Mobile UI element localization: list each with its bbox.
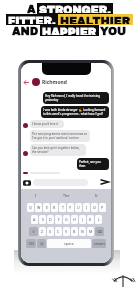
button[interactable]: N xyxy=(79,227,86,236)
staticText: N xyxy=(81,229,84,234)
staticText: J xyxy=(82,217,83,222)
staticText: I xyxy=(35,193,37,198)
staticText: G xyxy=(65,217,68,222)
staticText: YOU xyxy=(100,25,127,36)
button[interactable]: ⇧ xyxy=(29,227,38,236)
button[interactable]: P xyxy=(99,203,106,212)
button[interactable]: I xyxy=(83,203,90,212)
staticText: O xyxy=(93,205,96,210)
staticText: Q xyxy=(29,205,32,210)
button[interactable]: Y xyxy=(67,203,74,212)
staticText: It xyxy=(95,193,98,198)
staticText: I know you'd love it xyxy=(32,122,58,126)
staticText: Perfect, see you then xyxy=(79,160,107,168)
button[interactable]: X xyxy=(47,227,54,236)
staticText: L xyxy=(98,217,100,222)
staticText: A xyxy=(33,217,36,222)
button[interactable]: H xyxy=(71,215,78,224)
staticText: T xyxy=(62,205,64,210)
button[interactable]: Camera xyxy=(23,179,31,186)
staticText: P xyxy=(101,205,104,210)
button[interactable]: return xyxy=(92,239,106,248)
button[interactable]: A xyxy=(31,215,38,224)
button[interactable]: I was both kinda stronger 💪 Looking forw… xyxy=(43,108,107,116)
button[interactable]: Q xyxy=(27,203,34,212)
staticText: 123 xyxy=(28,241,35,246)
button[interactable]: ☺ xyxy=(37,239,46,248)
staticText: ☺ xyxy=(40,242,44,246)
staticText: Z xyxy=(41,229,44,234)
button[interactable]: The new programme starts tomorrow so I'v… xyxy=(32,132,88,140)
button[interactable]: W xyxy=(35,203,42,212)
button[interactable]: U xyxy=(75,203,82,212)
staticText: Can you best get it together below, the … xyxy=(32,146,84,154)
button[interactable]: Back xyxy=(21,76,111,88)
button[interactable]: T xyxy=(59,203,66,212)
button[interactable]: K xyxy=(87,215,94,224)
button[interactable]: ⌫ xyxy=(95,227,104,236)
staticText: M xyxy=(89,229,93,234)
staticText: W xyxy=(37,205,41,210)
button[interactable]: space xyxy=(47,239,91,248)
button[interactable]: Send xyxy=(100,178,109,186)
button[interactable]: The xyxy=(51,193,81,198)
button[interactable]: Back xyxy=(23,79,30,86)
button[interactable]: S xyxy=(39,215,46,224)
staticText: HEALTHIER xyxy=(60,15,131,24)
button[interactable]: J xyxy=(79,215,86,224)
staticText: U xyxy=(77,205,80,210)
button[interactable]: Can you best get it together below, the … xyxy=(32,146,84,154)
staticText: A xyxy=(27,3,36,14)
button[interactable]: Hey Richmond, I really loved the trainin… xyxy=(45,94,107,102)
staticText: H xyxy=(73,217,76,222)
staticText: The xyxy=(63,193,70,198)
button[interactable]: B xyxy=(71,227,78,236)
staticText: X xyxy=(49,229,52,234)
button[interactable]: V xyxy=(63,227,70,236)
staticText: ⌫ xyxy=(97,230,103,234)
staticText: return xyxy=(94,241,105,246)
staticText: F xyxy=(58,217,60,222)
button[interactable]: G xyxy=(63,215,70,224)
staticText: V xyxy=(65,229,68,234)
staticText: space xyxy=(64,241,74,246)
button[interactable]: L xyxy=(95,215,102,224)
button[interactable]: M xyxy=(87,227,94,236)
button[interactable]: D xyxy=(47,215,54,224)
staticText: Hey Richmond, I really loved the trainin… xyxy=(45,94,107,102)
staticText: S xyxy=(42,217,44,222)
button[interactable]: I know you'd love it xyxy=(32,122,62,126)
staticText: C xyxy=(57,229,60,234)
button[interactable]: 123 xyxy=(26,239,36,248)
staticText: AND xyxy=(12,25,39,36)
button[interactable]: Perfect, see you then xyxy=(79,160,107,168)
button[interactable]: I xyxy=(21,193,51,198)
button[interactable]: O xyxy=(91,203,98,212)
button[interactable]: E xyxy=(43,203,50,212)
staticText: E xyxy=(46,205,48,210)
staticText: K xyxy=(89,217,92,222)
staticText: FITTER, xyxy=(8,15,56,24)
staticText: STRONGER. xyxy=(39,4,111,13)
staticText: B xyxy=(73,229,76,234)
button[interactable]: R xyxy=(51,203,58,212)
staticText: I xyxy=(86,205,88,210)
staticText: R xyxy=(53,205,56,210)
staticText: D xyxy=(49,217,52,222)
button[interactable]: C xyxy=(55,227,62,236)
button[interactable]: Z xyxy=(39,227,46,236)
staticText: Y xyxy=(69,205,72,210)
staticText: The new programme starts tomorrow so I'v… xyxy=(32,132,88,140)
staticText: I was both kinda stronger 💪 Looking forw… xyxy=(43,108,107,116)
staticText: Richmond xyxy=(42,79,68,86)
staticText: HAPPIER xyxy=(42,26,97,35)
button[interactable]: F xyxy=(55,215,62,224)
staticText: ⇧ xyxy=(32,230,36,234)
button[interactable]: It xyxy=(81,193,111,198)
